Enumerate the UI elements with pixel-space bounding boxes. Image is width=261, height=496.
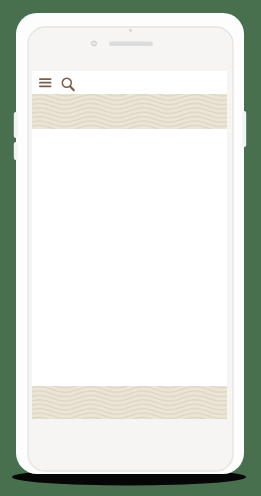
button[interactable]	[58, 73, 78, 92]
button[interactable]	[36, 73, 55, 90]
